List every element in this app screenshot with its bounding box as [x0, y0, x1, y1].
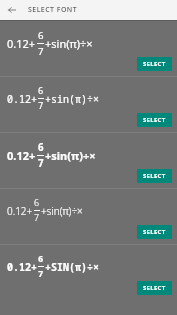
button[interactable]: SELECT: [137, 57, 172, 71]
staticText: +sin(π)÷×: [45, 36, 93, 51]
staticText: SELECT: [143, 60, 166, 68]
staticText: 0.12+: [7, 148, 36, 163]
staticText: 7: [38, 45, 44, 58]
staticText: 7: [38, 268, 44, 280]
staticText: 7: [34, 212, 40, 224]
staticText: 7: [38, 157, 44, 170]
staticText: +SIN(π)÷×: [45, 260, 99, 274]
button[interactable]: 0.12+: [0, 245, 177, 300]
button[interactable]: 0.12+: [0, 189, 177, 244]
staticText: 7: [38, 100, 44, 112]
staticText: +sin(π)÷×: [45, 92, 99, 106]
staticText: 6: [38, 85, 44, 97]
button[interactable]: 0.12+: [0, 133, 177, 188]
button[interactable]: SELECT: [137, 281, 172, 295]
button[interactable]: 0.12+: [0, 77, 177, 132]
staticText: 0.12+: [7, 92, 37, 106]
staticText: SELECT: [143, 284, 166, 292]
staticText: 6: [34, 197, 40, 209]
staticText: SELECT: [143, 116, 166, 124]
staticText: SELECT FONT: [28, 5, 78, 15]
button[interactable]: 0.12+: [0, 21, 177, 76]
button[interactable]: Back: [5, 3, 19, 17]
staticText: 0.12+: [7, 36, 36, 51]
staticText: 6: [38, 29, 44, 42]
staticText: +sin(π)÷×: [41, 204, 83, 218]
staticText: SELECT: [143, 228, 166, 236]
staticText: 6: [38, 253, 44, 265]
staticText: +sin(π)÷×: [45, 148, 96, 163]
staticText: 0.12+: [7, 204, 33, 218]
staticText: 6: [38, 141, 44, 154]
staticText: 0.12+: [7, 260, 37, 274]
button[interactable]: SELECT: [137, 225, 172, 239]
button[interactable]: SELECT: [137, 113, 172, 127]
button[interactable]: SELECT: [137, 169, 172, 183]
staticText: SELECT: [143, 172, 166, 180]
